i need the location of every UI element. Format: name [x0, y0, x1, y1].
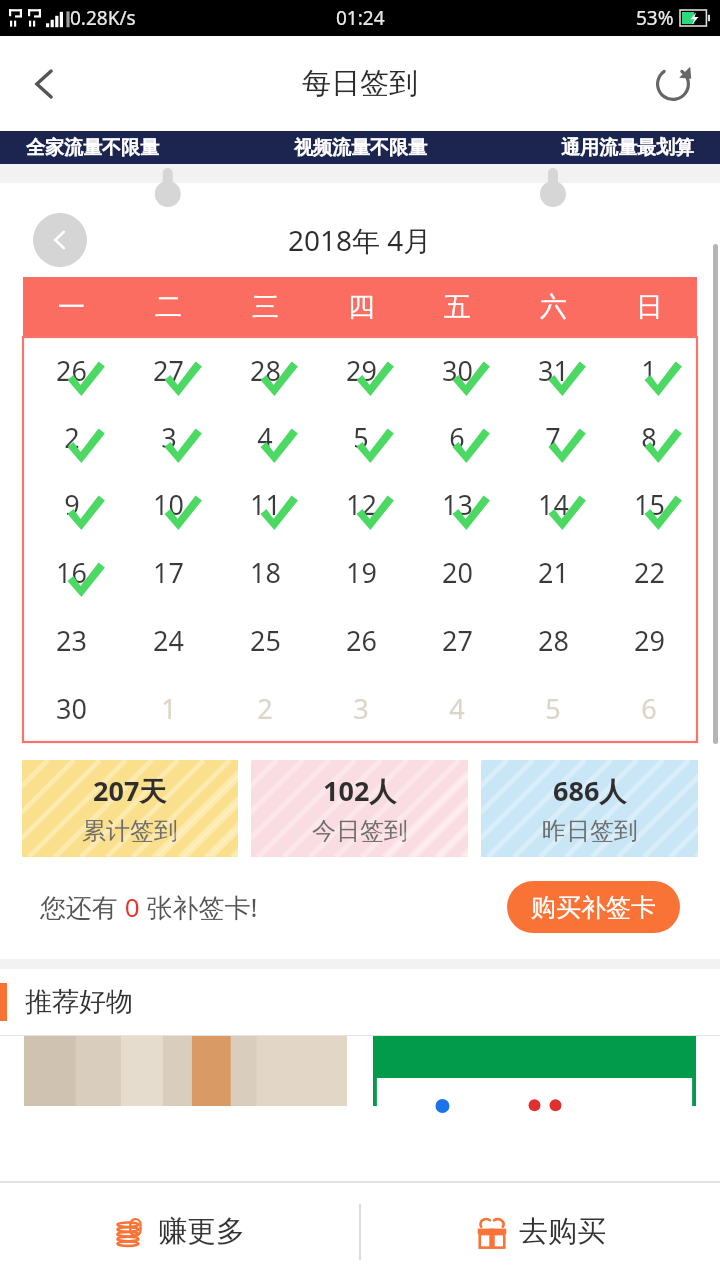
staticText: 28 — [250, 352, 281, 389]
button[interactable]: 14 — [505, 471, 601, 538]
staticText: 4 — [449, 690, 465, 727]
button[interactable]: 2 — [217, 674, 313, 742]
staticText: 15 — [634, 486, 665, 523]
staticText: 日 — [636, 290, 663, 324]
button[interactable]: 27 — [409, 606, 505, 674]
staticText: 13 — [442, 486, 473, 523]
button[interactable]: 15 — [601, 471, 697, 538]
staticText: 1 — [641, 352, 657, 389]
staticText: 23 — [56, 622, 87, 659]
staticText: 12 — [346, 486, 377, 523]
staticText: 2 — [257, 690, 273, 727]
button[interactable] — [373, 1036, 696, 1106]
staticText: 10 — [153, 486, 184, 523]
staticText: 6 — [449, 419, 465, 456]
button[interactable]: 207天 — [22, 760, 238, 857]
staticText: 27 — [442, 622, 473, 659]
button[interactable]: 29 — [601, 606, 697, 674]
button[interactable]: 27 — [120, 337, 217, 404]
staticText: 53% — [636, 5, 674, 31]
button[interactable]: 赚更多 — [0, 1183, 359, 1280]
button[interactable]: 16 — [23, 538, 120, 606]
button[interactable]: 1 — [120, 674, 217, 742]
button[interactable]: Refresh — [638, 49, 708, 119]
staticText: 一 — [58, 290, 85, 324]
button[interactable]: Previous month — [33, 213, 87, 267]
button[interactable]: 20 — [409, 538, 505, 606]
button[interactable]: 3 — [313, 674, 409, 742]
button[interactable]: 5 — [505, 674, 601, 742]
button[interactable]: 全家流量不限量 — [0, 131, 720, 164]
staticText: 9 — [64, 486, 80, 523]
staticText: 昨日签到 — [542, 816, 638, 846]
button[interactable]: 3 — [120, 404, 217, 471]
button[interactable]: 25 — [217, 606, 313, 674]
staticText: 18 — [250, 554, 281, 591]
button[interactable]: 9 — [23, 471, 120, 538]
staticText: 五 — [444, 290, 471, 324]
staticText: 31 — [538, 352, 569, 389]
button[interactable]: 5 — [313, 404, 409, 471]
staticText: 19 — [346, 554, 377, 591]
button[interactable]: 11 — [217, 471, 313, 538]
staticText: 11 — [250, 486, 281, 523]
staticText: 7 — [545, 419, 561, 456]
staticText: 0.28K/s — [70, 5, 136, 31]
staticText: 推荐好物 — [25, 985, 133, 1019]
button[interactable]: 6 — [601, 674, 697, 742]
staticText: 21 — [538, 554, 569, 591]
staticText: 207天 — [93, 772, 167, 809]
button[interactable]: 2 — [23, 404, 120, 471]
staticText: 4 — [257, 419, 273, 456]
staticText: 29 — [346, 352, 377, 389]
button[interactable]: 686人 — [481, 760, 698, 857]
button[interactable]: 12 — [313, 471, 409, 538]
staticText: 四 — [348, 290, 375, 324]
button[interactable]: 26 — [313, 606, 409, 674]
button[interactable]: 24 — [120, 606, 217, 674]
button[interactable]: 23 — [23, 606, 120, 674]
button[interactable]: 26 — [23, 337, 120, 404]
button[interactable]: 6 — [409, 404, 505, 471]
staticText: 1 — [161, 690, 177, 727]
staticText: 六 — [540, 290, 567, 324]
button[interactable]: 22 — [601, 538, 697, 606]
button[interactable]: 19 — [313, 538, 409, 606]
button[interactable]: 18 — [217, 538, 313, 606]
staticText: 16 — [56, 554, 87, 591]
staticText: 累计签到 — [82, 816, 178, 846]
staticText: 27 — [153, 352, 184, 389]
button[interactable]: 4 — [217, 404, 313, 471]
button[interactable]: 30 — [23, 674, 120, 742]
button[interactable]: 31 — [505, 337, 601, 404]
staticText: 5 — [353, 419, 369, 456]
staticText: 22 — [634, 554, 665, 591]
button[interactable]: 102人 — [251, 760, 468, 857]
button[interactable]: 去购买 — [361, 1183, 720, 1280]
staticText: 6 — [641, 690, 657, 727]
button[interactable]: 8 — [601, 404, 697, 471]
staticText: 3 — [353, 690, 369, 727]
staticText: 26 — [346, 622, 377, 659]
staticText: 01:24 — [336, 5, 385, 31]
button[interactable]: Back — [10, 49, 80, 119]
button[interactable]: 10 — [120, 471, 217, 538]
button[interactable]: 28 — [505, 606, 601, 674]
staticText: 26 — [56, 352, 87, 389]
staticText: 20 — [442, 554, 473, 591]
button[interactable]: 7 — [505, 404, 601, 471]
button[interactable]: 4 — [409, 674, 505, 742]
button[interactable]: 17 — [120, 538, 217, 606]
staticText: 30 — [442, 352, 473, 389]
button[interactable]: 13 — [409, 471, 505, 538]
staticText: 25 — [250, 622, 281, 659]
button[interactable]: 1 — [601, 337, 697, 404]
button[interactable]: 购买补签卡 — [507, 881, 680, 933]
staticText: 102人 — [323, 772, 397, 809]
button[interactable]: 29 — [313, 337, 409, 404]
button[interactable]: 30 — [409, 337, 505, 404]
button[interactable]: 28 — [217, 337, 313, 404]
staticText: 686人 — [553, 772, 627, 809]
button[interactable] — [24, 1036, 347, 1106]
button[interactable]: 21 — [505, 538, 601, 606]
